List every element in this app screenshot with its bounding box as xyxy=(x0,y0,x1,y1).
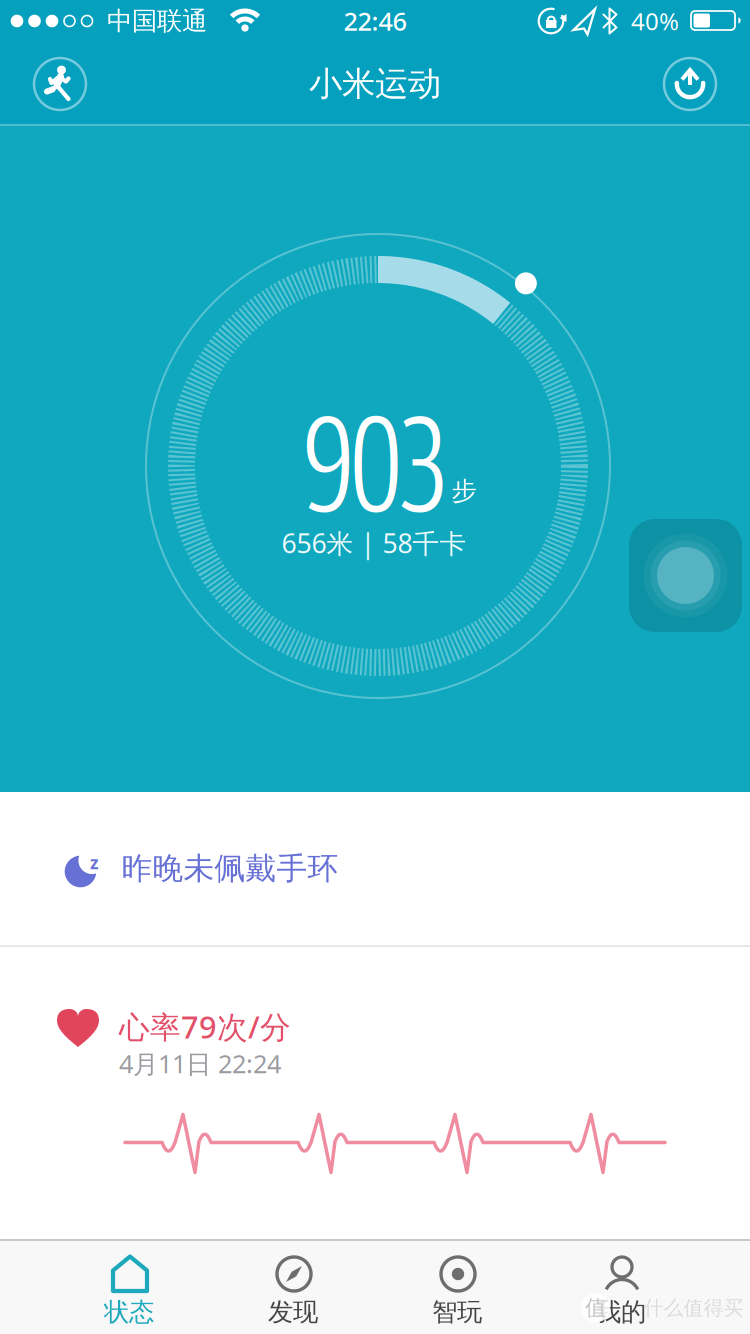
staticText: 中国联通 xyxy=(107,5,207,36)
staticText: 心率79次/分 xyxy=(119,1006,291,1047)
staticText: 40% xyxy=(631,5,679,37)
staticText: 我的 xyxy=(596,1296,646,1327)
staticText: 昨晚未佩戴手环 xyxy=(121,850,338,887)
staticText: 智玩 xyxy=(432,1296,482,1327)
staticText: 发现 xyxy=(268,1296,318,1327)
staticText: 什么值得买 xyxy=(643,1296,743,1320)
button[interactable]: 发现 xyxy=(218,1239,368,1334)
button[interactable]: 智玩 xyxy=(382,1239,532,1334)
button[interactable]: AssistiveTouch xyxy=(629,519,742,632)
staticText: 步 xyxy=(451,475,476,506)
staticText: 值 xyxy=(585,1295,606,1321)
staticText: 4月11日 22:24 xyxy=(119,1047,281,1080)
staticText: 小米运动 xyxy=(309,63,441,104)
staticText: 656米 | 58千卡 xyxy=(281,525,466,561)
staticText: 903 xyxy=(304,382,448,542)
button[interactable]: z xyxy=(0,792,750,945)
staticText: 状态 xyxy=(104,1296,154,1327)
button[interactable]: 心率79次/分 xyxy=(0,947,750,1239)
button[interactable]: 分享 xyxy=(662,56,717,111)
staticText: z xyxy=(90,851,99,874)
button[interactable]: 我的 xyxy=(546,1239,696,1334)
button[interactable]: 状态 xyxy=(54,1239,204,1334)
button[interactable]: 运动记录 xyxy=(32,56,87,111)
staticText: 22:46 xyxy=(343,4,406,38)
